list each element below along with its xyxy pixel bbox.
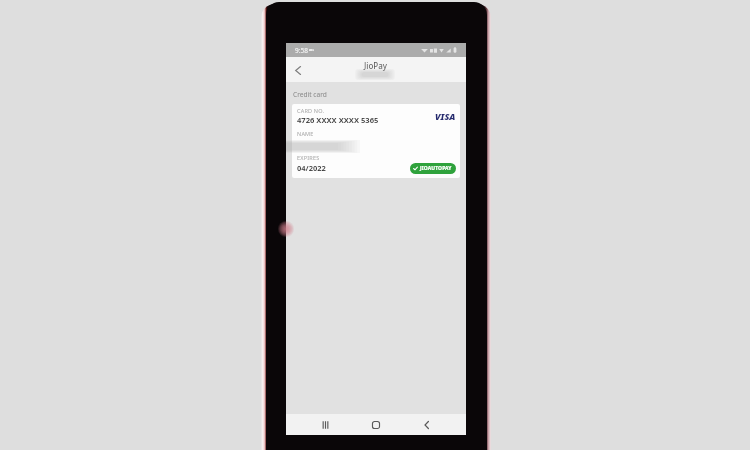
- staticText: 4726 XXXX XXXX 5365: [297, 115, 379, 125]
- button[interactable]: CARD NO.: [292, 104, 460, 178]
- button[interactable]: JIOAUTOPAY: [410, 163, 456, 174]
- button[interactable]: Back: [288, 60, 308, 80]
- staticText: NAME: [297, 130, 314, 137]
- button[interactable]: Recent apps: [300, 414, 350, 435]
- button[interactable]: Home: [350, 414, 401, 435]
- staticText: VISA: [435, 110, 456, 122]
- staticText: JIOAUTOPAY: [420, 165, 452, 172]
- staticText: Credit card: [293, 90, 327, 99]
- staticText: 04/2022: [297, 163, 326, 173]
- staticText: 9:58: [295, 46, 308, 55]
- button[interactable]: Back: [401, 414, 452, 435]
- staticText: EXPIRES: [297, 154, 320, 161]
- staticText: CARD NO.: [297, 107, 325, 114]
- staticText: JioPay: [364, 60, 388, 71]
